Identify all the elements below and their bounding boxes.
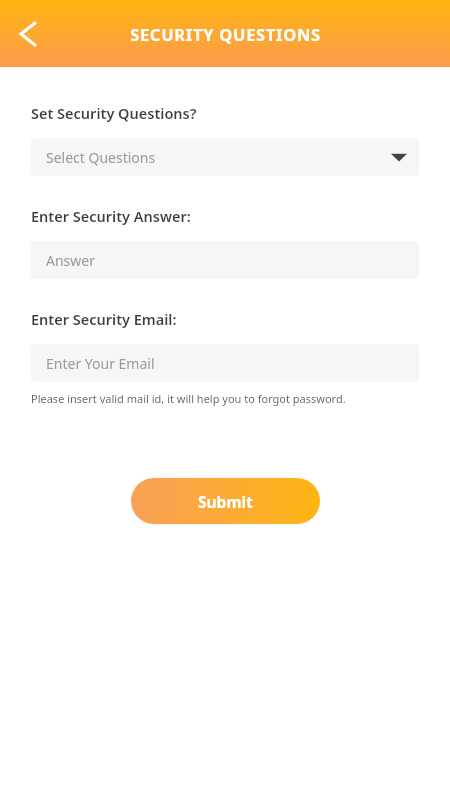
staticText: Please insert valid mail id, it will hel… xyxy=(31,391,346,406)
button[interactable]: Back xyxy=(8,14,48,54)
staticText: Select Questions xyxy=(46,148,156,167)
button[interactable]: Submit xyxy=(131,478,320,524)
staticText: Enter Security Email: xyxy=(31,309,177,329)
button[interactable]: Security email input xyxy=(31,344,419,382)
staticText: SECURITY QUESTIONS xyxy=(130,23,321,45)
staticText: Answer xyxy=(46,251,95,270)
button[interactable]: Select Questions dropdown xyxy=(31,138,419,176)
staticText: Submit xyxy=(198,491,253,512)
staticText: Enter Security Answer: xyxy=(31,206,191,226)
staticText: Set Security Questions? xyxy=(31,103,197,123)
staticText: Enter Your Email xyxy=(46,354,155,373)
button[interactable]: Security answer input xyxy=(31,241,419,279)
